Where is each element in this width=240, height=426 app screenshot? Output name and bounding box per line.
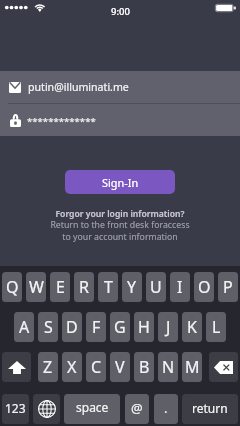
button[interactable]: Shift bbox=[2, 352, 31, 382]
staticText: G bbox=[114, 316, 126, 338]
staticText: ************* bbox=[27, 115, 96, 128]
button[interactable]: Z bbox=[38, 352, 58, 382]
staticText: J bbox=[166, 316, 171, 338]
staticText: V bbox=[115, 356, 125, 378]
staticText: K bbox=[187, 316, 197, 338]
button[interactable]: V bbox=[110, 352, 130, 382]
button[interactable]: I bbox=[170, 272, 190, 302]
staticText: M bbox=[185, 356, 200, 378]
staticText: Return to the front desk foraccess to yo… bbox=[50, 219, 190, 243]
button[interactable]: Backspace bbox=[209, 352, 238, 382]
button[interactable]: ************* bbox=[0, 104, 240, 136]
staticText: E bbox=[56, 276, 65, 298]
button[interactable]: C bbox=[86, 352, 106, 382]
staticText: A bbox=[19, 316, 30, 338]
staticText: Z bbox=[43, 356, 53, 378]
button[interactable]: S bbox=[38, 312, 58, 342]
staticText: Q bbox=[6, 276, 19, 298]
button[interactable]: @ bbox=[125, 394, 149, 424]
staticText: H bbox=[138, 316, 150, 338]
staticText: 9:00 bbox=[111, 5, 130, 18]
button[interactable]: B bbox=[134, 352, 154, 382]
staticText: N bbox=[162, 356, 175, 378]
button[interactable]: O bbox=[194, 272, 214, 302]
staticText: T bbox=[104, 276, 113, 298]
button[interactable]: N bbox=[158, 352, 178, 382]
staticText: return bbox=[192, 400, 228, 416]
button[interactable]: Y bbox=[122, 272, 142, 302]
staticText: 123 bbox=[5, 400, 26, 416]
staticText: F bbox=[92, 316, 101, 338]
button[interactable]: H bbox=[134, 312, 154, 342]
button[interactable]: 123 bbox=[2, 394, 29, 424]
staticText: D bbox=[66, 316, 78, 338]
button[interactable]: U bbox=[146, 272, 166, 302]
button[interactable]: A bbox=[14, 312, 34, 342]
button[interactable]: . bbox=[154, 394, 178, 424]
button[interactable]: E bbox=[50, 272, 70, 302]
button[interactable]: X bbox=[62, 352, 82, 382]
button[interactable]: Q bbox=[2, 272, 22, 302]
button[interactable]: T bbox=[98, 272, 118, 302]
staticText: I bbox=[177, 276, 183, 298]
staticText: W bbox=[29, 276, 44, 298]
staticText: Forgor your login information? bbox=[55, 208, 185, 220]
staticText: putin@illuminati.me bbox=[28, 80, 129, 94]
button[interactable]: F bbox=[86, 312, 106, 342]
button[interactable]: putin@illuminati.me bbox=[0, 71, 240, 103]
staticText: R bbox=[79, 276, 89, 298]
button[interactable]: R bbox=[74, 272, 94, 302]
staticText: . bbox=[164, 399, 168, 417]
button[interactable]: space bbox=[64, 394, 120, 424]
staticText: C bbox=[91, 356, 102, 378]
staticText: L bbox=[212, 316, 221, 338]
button[interactable]: Sign-In bbox=[65, 170, 175, 194]
staticText: O bbox=[198, 276, 211, 298]
button[interactable]: K bbox=[182, 312, 202, 342]
staticText: S bbox=[44, 316, 53, 338]
staticText: B bbox=[139, 356, 150, 378]
button[interactable]: M bbox=[182, 352, 202, 382]
button[interactable]: return bbox=[182, 394, 238, 424]
staticText: Y bbox=[127, 276, 137, 298]
button[interactable]: P bbox=[218, 272, 238, 302]
staticText: space bbox=[76, 399, 109, 415]
button[interactable]: J bbox=[158, 312, 178, 342]
staticText: P bbox=[223, 276, 233, 298]
button[interactable]: W bbox=[26, 272, 46, 302]
button[interactable]: Change keyboard bbox=[33, 394, 60, 424]
staticText: @ bbox=[131, 399, 143, 417]
staticText: U bbox=[150, 276, 162, 298]
button[interactable]: L bbox=[206, 312, 226, 342]
staticText: X bbox=[67, 356, 77, 378]
staticText: Sign-In bbox=[102, 175, 139, 190]
button[interactable]: G bbox=[110, 312, 130, 342]
button[interactable]: D bbox=[62, 312, 82, 342]
